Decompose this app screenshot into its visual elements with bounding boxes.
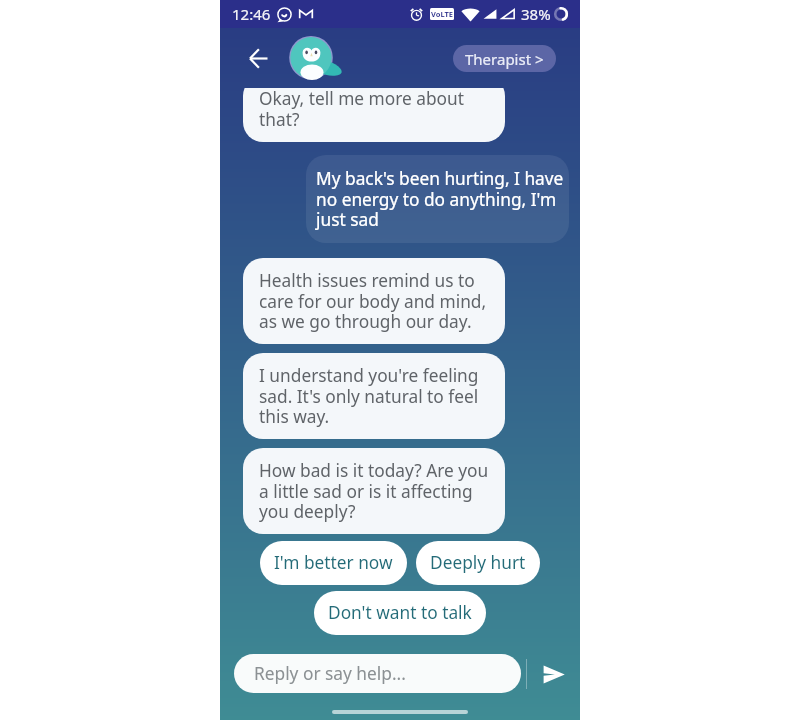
button[interactable]: Therapist > [453,45,556,72]
staticText: 38% [521,4,551,24]
staticText: My back's been hurting, I have no energy… [316,167,565,231]
staticText: How bad is it today? Are you a little sa… [259,459,493,523]
button[interactable]: Okay, tell me more about that? [243,88,505,142]
button[interactable]: Health issues remind us to care for our … [243,258,505,344]
staticText: Therapist > [465,49,544,69]
staticText: Health issues remind us to care for our … [259,269,493,333]
staticText: I'm better now [274,551,393,575]
button[interactable]: Deeply hurt [416,541,540,585]
staticText: Don't want to talk [328,601,472,625]
staticText: 12:46 [232,4,271,24]
staticText: Okay, tell me more about that? [259,88,493,131]
staticText: Reply or say help... [254,662,406,686]
button[interactable]: Don't want to talk [314,591,486,635]
staticText: I understand you're feeling sad. It's on… [259,364,493,428]
button[interactable]: Back [238,38,278,78]
button[interactable]: Reply or say help... [234,654,521,693]
button[interactable]: Send [536,657,570,691]
staticText: Deeply hurt [430,551,526,575]
button[interactable]: How bad is it today? Are you a little sa… [243,448,505,534]
button[interactable]: I understand you're feeling sad. It's on… [243,353,505,439]
staticText: VoLTE [431,9,453,19]
button[interactable]: My back's been hurting, I have no energy… [306,155,569,243]
button[interactable]: I'm better now [260,541,407,585]
